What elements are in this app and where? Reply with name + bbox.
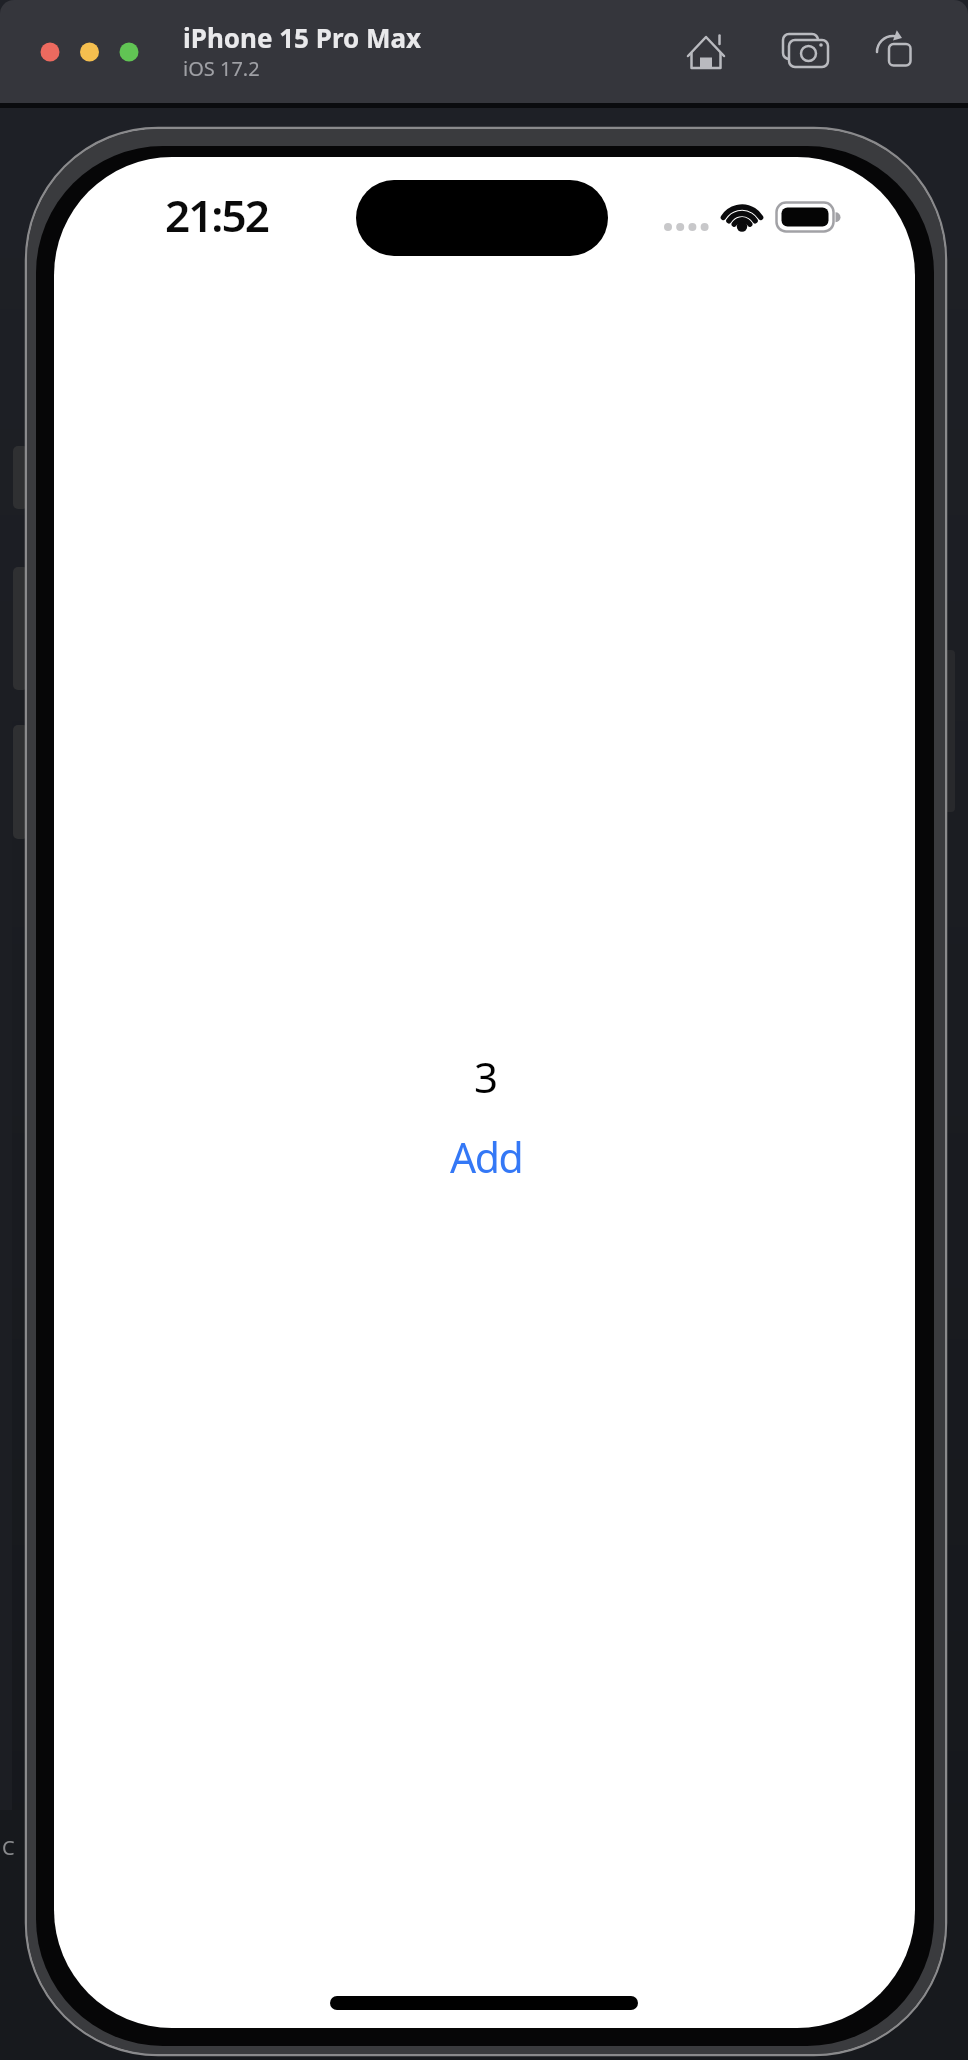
button[interactable] <box>872 25 922 75</box>
staticText: C <box>2 1834 15 1861</box>
staticText: 21:52 <box>165 185 268 245</box>
staticText: 3 <box>474 1048 499 1105</box>
button[interactable] <box>681 27 731 77</box>
staticText: Add <box>450 1129 523 1185</box>
button[interactable]: Add <box>386 1126 586 1188</box>
staticText: iPhone 15 Pro Max <box>183 20 422 55</box>
staticText: iOS 17.2 <box>183 55 260 82</box>
button[interactable] <box>780 25 834 79</box>
